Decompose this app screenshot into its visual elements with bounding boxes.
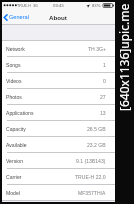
- button[interactable]: Applications: [2, 105, 115, 121]
- staticText: 27: [100, 94, 106, 100]
- staticText: Capacity: [6, 126, 26, 132]
- staticText: Version: [6, 158, 23, 164]
- staticText: TRUE-H 22.0: [75, 174, 106, 180]
- button[interactable]: Version: [2, 153, 115, 169]
- staticText: 0: [103, 78, 106, 84]
- staticText: 83%: [92, 3, 101, 8]
- button[interactable]: Network: [2, 41, 115, 57]
- staticText: Network: [6, 46, 25, 52]
- staticText: Model: [6, 190, 20, 196]
- staticText: MF357TH/A: [78, 190, 106, 196]
- staticText: General: [9, 14, 29, 20]
- staticText: 3G: [33, 4, 38, 8]
- button[interactable]: Videos: [2, 73, 115, 89]
- button[interactable]: Available: [2, 137, 115, 153]
- staticText: Carrier: [6, 174, 22, 180]
- button[interactable]: Capacity: [2, 121, 115, 137]
- staticText: 23.2 GB: [87, 142, 106, 148]
- staticText: 9.1 (13B143): [76, 158, 106, 164]
- staticText: TH 3G+: [88, 46, 106, 52]
- staticText: 26.5 GB: [87, 126, 106, 132]
- staticText: Videos: [6, 78, 22, 84]
- staticText: About: [49, 14, 67, 21]
- staticText: Songs: [6, 62, 21, 68]
- button[interactable]: Carrier: [2, 169, 115, 185]
- staticText: 1: [103, 62, 106, 68]
- button[interactable]: Photos: [2, 89, 115, 105]
- button[interactable]: Songs: [2, 57, 115, 73]
- button[interactable]: General: [3, 9, 29, 25]
- staticText: TRUE-H: [17, 4, 31, 8]
- staticText: 09:43: [53, 3, 64, 8]
- button[interactable]: Model: [2, 185, 115, 201]
- staticText: 13: [100, 110, 106, 116]
- staticText: Photos: [6, 94, 22, 100]
- staticText: Available: [6, 142, 27, 148]
- staticText: Applications: [6, 110, 34, 116]
